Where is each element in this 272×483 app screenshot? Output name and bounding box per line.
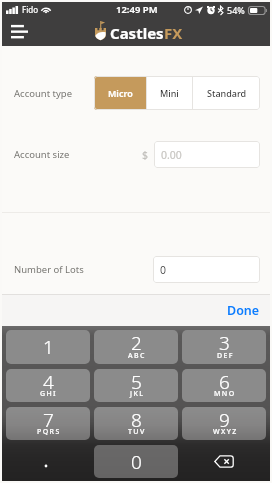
staticText: 0	[131, 449, 142, 475]
staticText: ABC	[128, 351, 146, 361]
staticText: Standard	[207, 87, 247, 99]
staticText: DEF	[217, 351, 234, 361]
staticText: 12:49 PM	[116, 3, 158, 16]
staticText: Account size	[14, 148, 70, 161]
button[interactable]: 9	[182, 407, 266, 440]
staticText: 3	[219, 330, 230, 356]
button[interactable]: Standard	[193, 76, 260, 110]
button[interactable]: 6	[182, 369, 266, 402]
staticText: 1	[43, 334, 54, 360]
staticText: 0.00	[161, 148, 182, 162]
button[interactable]: 0.00	[154, 141, 260, 168]
button[interactable]: Done	[227, 295, 260, 326]
staticText: TUV	[128, 427, 146, 437]
staticText: 54%	[227, 4, 245, 16]
staticText: Account type	[14, 87, 73, 100]
button[interactable]: 0	[94, 445, 178, 478]
staticText: 6	[219, 369, 230, 395]
staticText: 2	[131, 330, 142, 356]
staticText: $	[142, 148, 149, 162]
staticText: Number of Lots	[14, 263, 84, 276]
staticText: MNO	[214, 389, 236, 399]
staticText: Micro	[108, 87, 133, 99]
staticText: 7	[43, 407, 54, 433]
staticText: 4	[43, 369, 54, 395]
button[interactable]: 3	[182, 330, 266, 364]
staticText: 8	[131, 407, 142, 433]
button[interactable]: Micro	[94, 76, 146, 110]
button[interactable]: 7	[6, 407, 90, 440]
button[interactable]: Decimal point	[6, 445, 90, 478]
staticText: Fido	[22, 4, 38, 15]
staticText: Mini	[160, 87, 179, 99]
button[interactable]: 4	[6, 369, 90, 402]
button[interactable]: 8	[94, 407, 178, 440]
staticText: JKL	[130, 389, 145, 399]
staticText: GHI	[40, 389, 58, 399]
staticText: 0	[160, 263, 167, 277]
staticText: PQRS	[37, 427, 61, 437]
button[interactable]: 1	[6, 330, 90, 364]
button[interactable]: Menu	[2, 17, 36, 46]
button[interactable]: 5	[94, 369, 178, 402]
staticText: FX	[164, 23, 183, 43]
staticText: 9	[219, 407, 230, 433]
staticText: WXYZ	[213, 427, 238, 437]
button[interactable]: Backspace	[182, 445, 266, 478]
button[interactable]: 2	[94, 330, 178, 364]
staticText: Castles	[110, 23, 164, 43]
staticText: Done	[227, 302, 260, 319]
button[interactable]: 0	[153, 256, 260, 283]
button[interactable]: Mini	[147, 76, 192, 110]
staticText: 5	[131, 369, 142, 395]
